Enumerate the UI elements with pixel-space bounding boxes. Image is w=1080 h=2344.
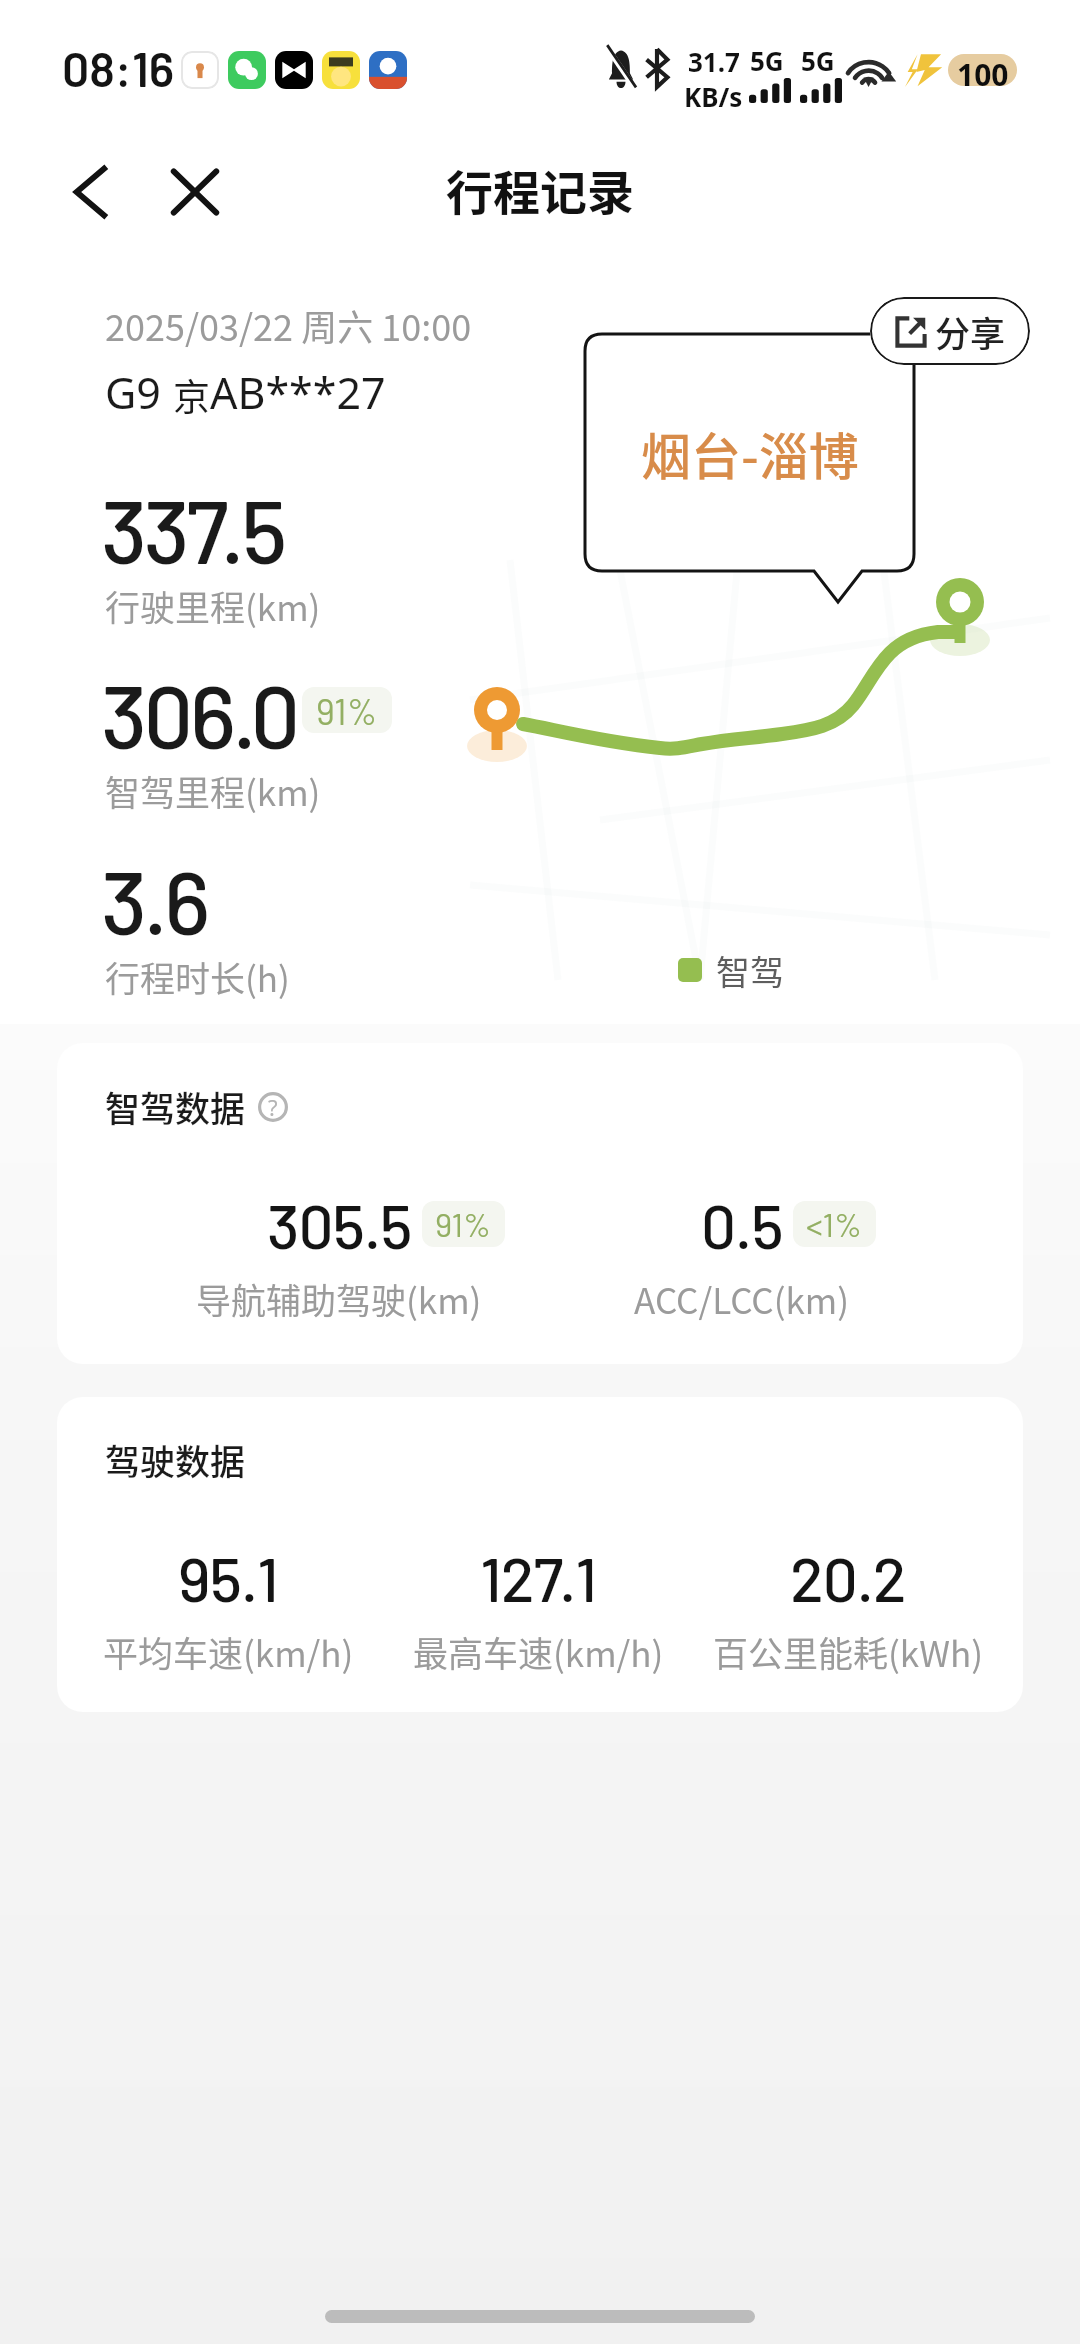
staticText: 95.1: [178, 1540, 278, 1614]
staticText: 91%: [435, 1204, 492, 1244]
staticText: KB/s: [684, 79, 743, 114]
staticText: 337.5: [101, 476, 284, 582]
staticText: 烟台-淄博: [641, 417, 859, 489]
staticText: 08:16: [62, 39, 175, 97]
staticText: 91%: [316, 689, 378, 732]
staticText: 0.5: [701, 1187, 783, 1261]
staticText: AB***27: [210, 363, 386, 422]
staticText: 3.6: [101, 847, 207, 953]
staticText: 100: [957, 54, 1009, 86]
staticText: 导航辅助驾驶(km): [196, 1273, 482, 1324]
staticText: ACC/LCC(km): [634, 1273, 850, 1324]
staticText: 127.1: [480, 1540, 597, 1614]
staticText: 5G: [750, 43, 784, 78]
staticText: 分享: [935, 306, 1006, 357]
staticText: 20.2: [790, 1540, 906, 1614]
staticText: 5G: [801, 43, 835, 78]
staticText: 行驶里程(km): [105, 580, 321, 631]
staticText: 百公里能耗(kWh): [713, 1626, 983, 1677]
staticText: 305.5: [267, 1187, 412, 1261]
staticText: 306.0: [101, 661, 297, 767]
staticText: 行程时长(h): [105, 951, 290, 1002]
staticText: 智驾里程(km): [105, 765, 321, 816]
staticText: 平均车速(km/h): [103, 1626, 354, 1677]
staticText: 智驾数据: [105, 1081, 246, 1132]
staticText: 31.7: [688, 44, 740, 79]
button[interactable]: Back: [40, 138, 148, 246]
staticText: <1%: [806, 1204, 863, 1244]
staticText: ?: [268, 1092, 278, 1122]
button[interactable]: Help: [258, 1092, 288, 1122]
staticText: 2025/03/22 周六 10:00: [105, 299, 472, 351]
staticText: 京: [173, 368, 210, 422]
button[interactable]: Close: [141, 138, 249, 246]
staticText: G9: [105, 363, 173, 422]
staticText: 行程记录: [446, 155, 634, 223]
staticText: 驾驶数据: [105, 1434, 246, 1485]
button[interactable]: 分享: [870, 297, 1030, 365]
staticText: 智驾: [716, 946, 784, 995]
staticText: 最高车速(km/h): [413, 1626, 664, 1677]
